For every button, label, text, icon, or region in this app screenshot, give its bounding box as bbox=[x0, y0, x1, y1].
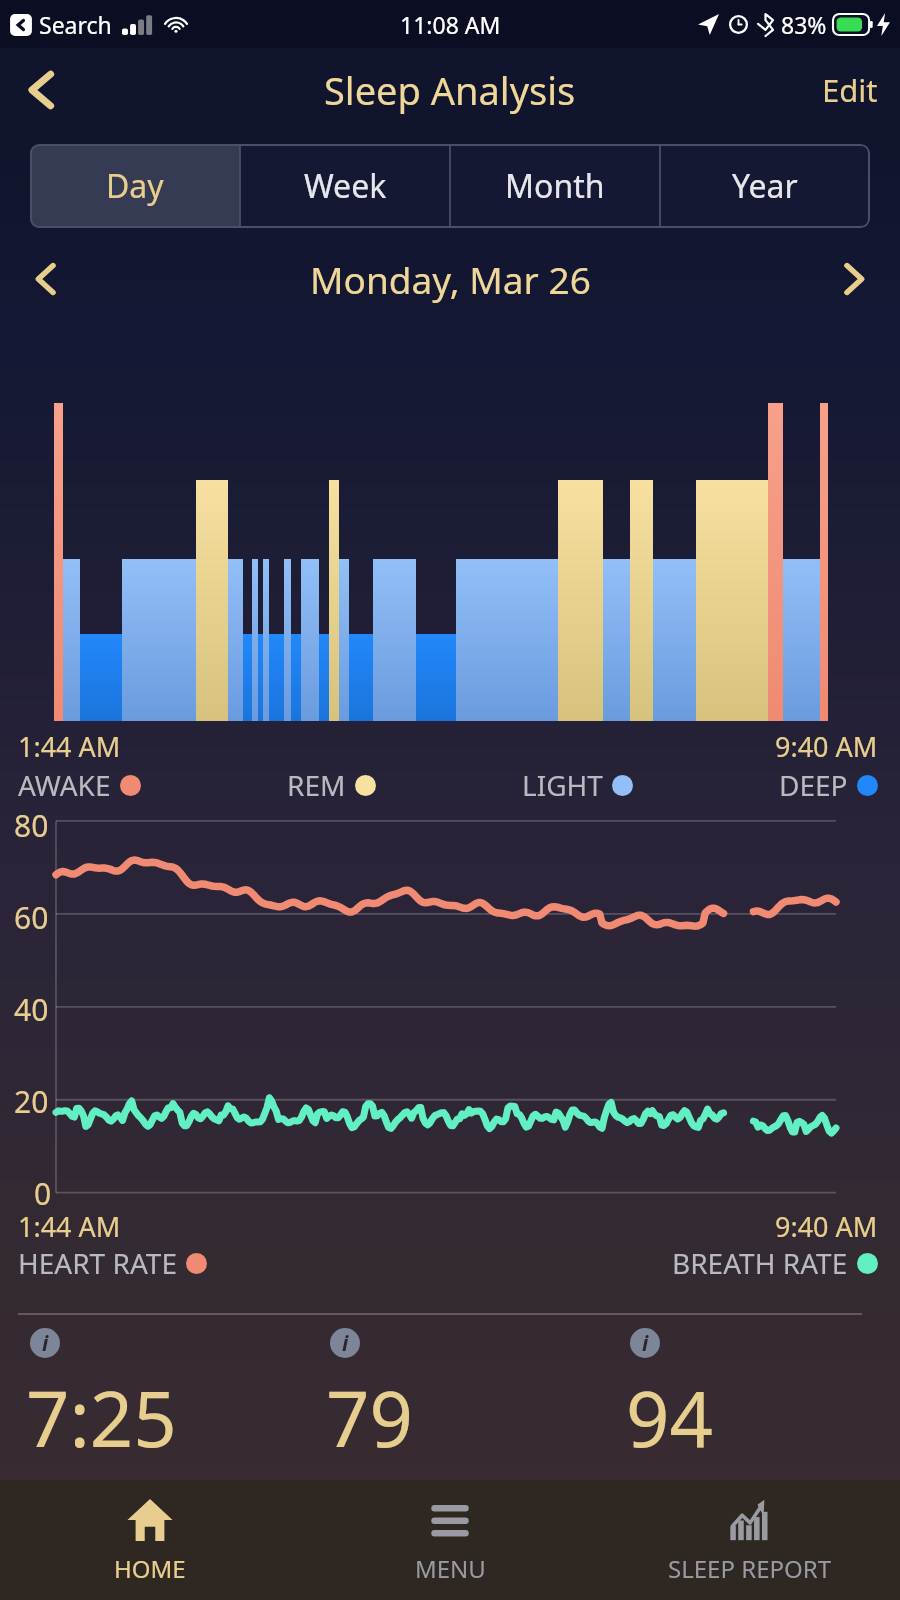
staticText: 9:40 AM bbox=[775, 728, 878, 764]
staticText: 60 bbox=[14, 897, 49, 938]
button[interactable]: Info bbox=[0, 1328, 300, 1470]
staticText: Day bbox=[106, 164, 164, 208]
staticText: Week bbox=[304, 164, 387, 208]
staticText: REM bbox=[287, 766, 346, 804]
staticText: i bbox=[642, 1329, 649, 1358]
button[interactable]: DEEP bbox=[779, 766, 878, 804]
staticText: SLEEP REPORT bbox=[668, 1552, 832, 1585]
button[interactable]: REM bbox=[287, 766, 376, 804]
staticText: i bbox=[342, 1329, 349, 1358]
button[interactable]: HOME bbox=[0, 1480, 300, 1600]
staticText: DEEP bbox=[779, 766, 848, 804]
staticText: AWAKE bbox=[18, 766, 111, 804]
staticText: HEART RATE bbox=[18, 1244, 177, 1282]
staticText: 20 bbox=[14, 1081, 49, 1122]
button[interactable]: SLEEP REPORT bbox=[600, 1480, 900, 1600]
button[interactable]: Back bbox=[10, 58, 74, 122]
staticText: 80 bbox=[14, 805, 49, 846]
staticText: 79 bbox=[326, 1366, 413, 1470]
staticText: Search bbox=[39, 9, 112, 40]
button[interactable]: HEART RATE bbox=[18, 1244, 207, 1282]
staticText: Sleep Analysis bbox=[324, 64, 576, 116]
button[interactable]: Next day bbox=[822, 247, 886, 311]
button[interactable]: MENU bbox=[300, 1480, 600, 1600]
button[interactable]: Info bbox=[300, 1328, 600, 1470]
button[interactable]: Edit bbox=[814, 59, 886, 121]
other: Info bbox=[630, 1328, 660, 1358]
staticText: 1:44 AM bbox=[18, 1208, 121, 1242]
staticText: 83% bbox=[781, 9, 827, 40]
staticText: 0 bbox=[34, 1173, 52, 1208]
button[interactable]: Week bbox=[240, 144, 450, 228]
staticText: 11:08 AM bbox=[400, 9, 501, 40]
button[interactable]: Previous day bbox=[14, 247, 78, 311]
button[interactable]: Month bbox=[450, 144, 660, 228]
staticText: Year bbox=[732, 164, 798, 208]
staticText: Edit bbox=[822, 69, 878, 111]
staticText: 94 bbox=[626, 1366, 713, 1470]
staticText: i bbox=[42, 1329, 49, 1358]
button[interactable]: LIGHT bbox=[522, 766, 633, 804]
staticText: MENU bbox=[415, 1552, 486, 1585]
staticText: 7:25 bbox=[26, 1366, 177, 1470]
button[interactable]: BREATH RATE bbox=[672, 1244, 878, 1282]
staticText: Month bbox=[505, 164, 605, 208]
other: Info bbox=[30, 1328, 60, 1358]
staticText: BREATH RATE bbox=[672, 1244, 848, 1282]
button[interactable]: Day bbox=[30, 144, 240, 228]
staticText: 1:44 AM bbox=[18, 728, 121, 764]
button[interactable]: AWAKE bbox=[18, 766, 141, 804]
staticText: LIGHT bbox=[522, 766, 603, 804]
button[interactable]: Info bbox=[600, 1328, 900, 1470]
button[interactable]: Monday, Mar 26 bbox=[310, 254, 591, 304]
staticText: HOME bbox=[114, 1552, 186, 1585]
other: Info bbox=[330, 1328, 360, 1358]
button[interactable]: Year bbox=[660, 144, 870, 228]
staticText: 40 bbox=[14, 989, 49, 1030]
staticText: 9:40 AM bbox=[775, 1208, 878, 1242]
